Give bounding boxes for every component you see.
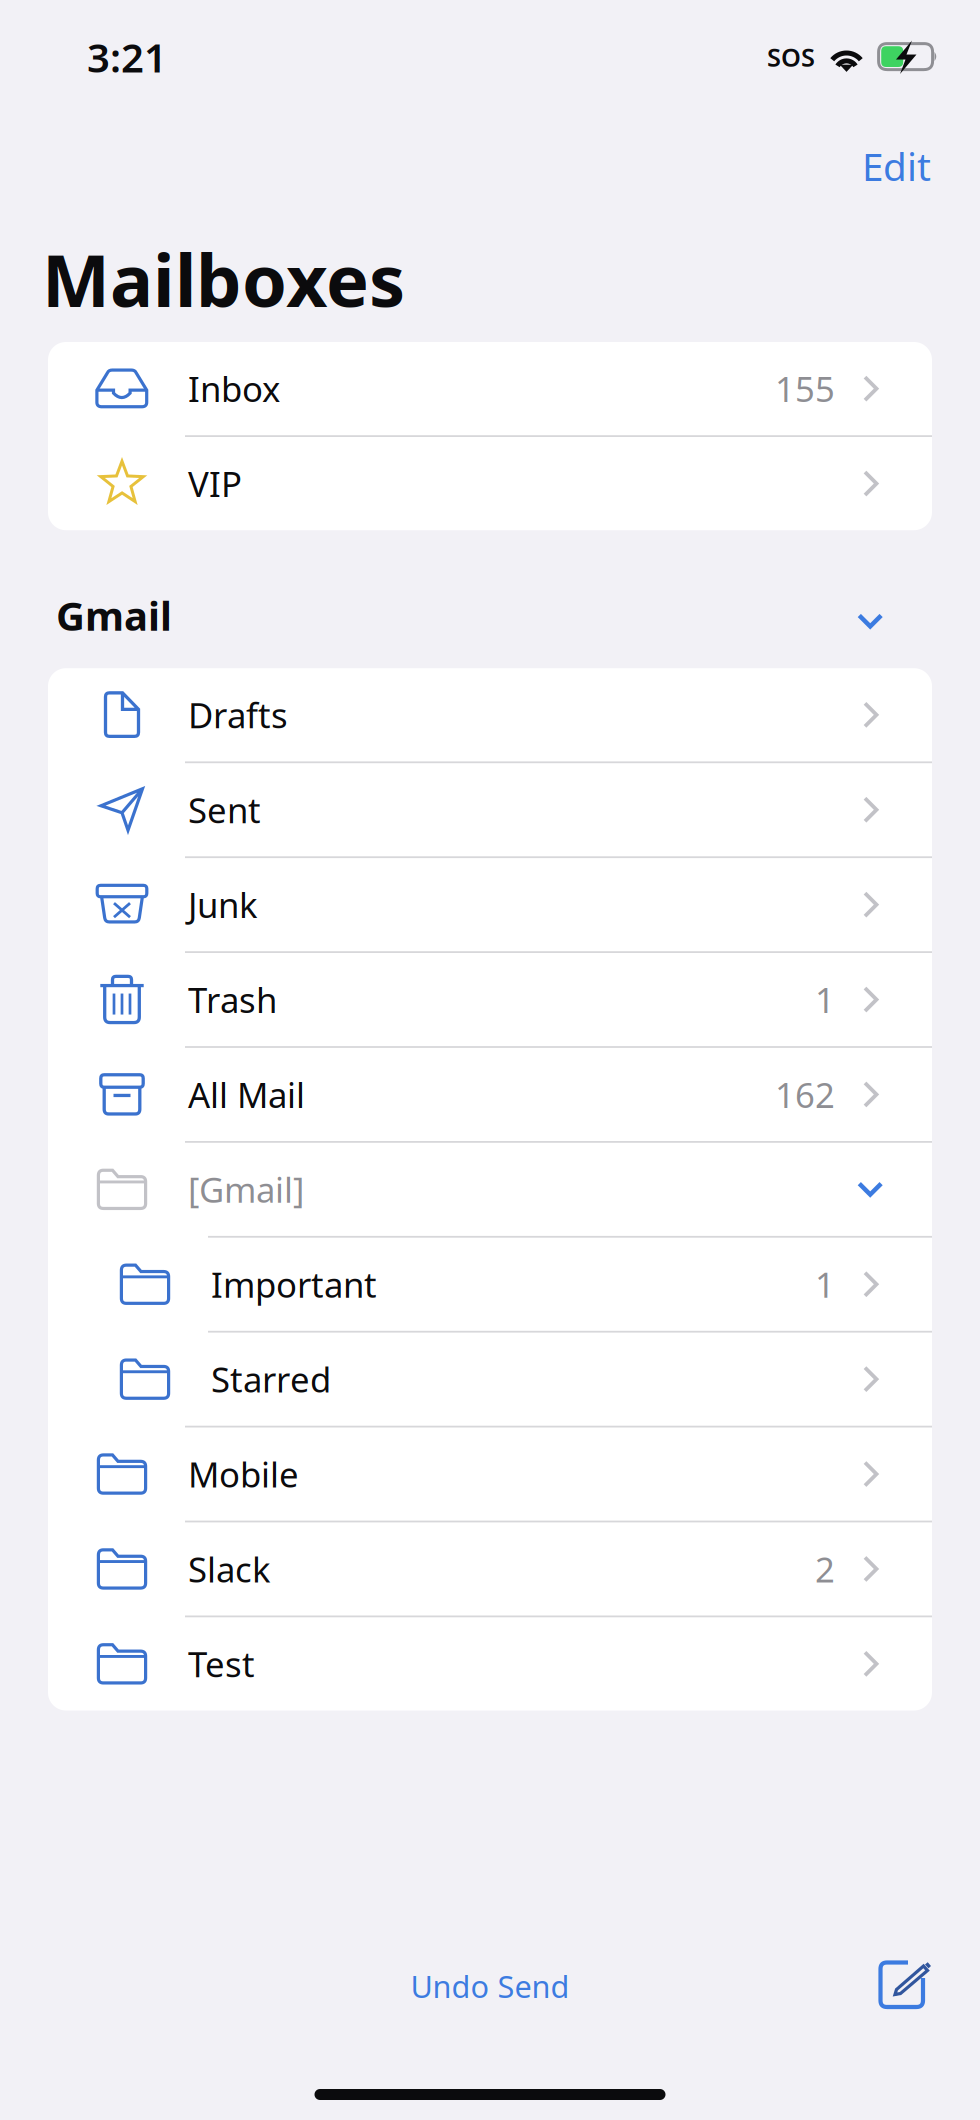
staticText: Important	[211, 1261, 377, 1307]
button[interactable]: Inbox	[48, 342, 932, 435]
button[interactable]: Drafts	[48, 668, 932, 761]
staticText: Inbox	[188, 366, 280, 412]
button[interactable]: Edit	[846, 121, 947, 197]
button[interactable]: Mobile	[48, 1427, 932, 1521]
staticText: [Gmail]	[188, 1166, 304, 1212]
staticText: Slack	[188, 1546, 271, 1592]
button[interactable]: Starred	[48, 1332, 932, 1426]
button[interactable]: All Mail	[48, 1048, 932, 1141]
staticText: Undo Send	[410, 1966, 569, 2006]
staticText: 155	[775, 366, 835, 412]
staticText: Gmail	[56, 589, 172, 642]
staticText: 1	[815, 976, 835, 1022]
button[interactable]: VIP	[48, 437, 932, 530]
staticText: 1	[815, 1261, 835, 1307]
button[interactable]: Sent	[48, 763, 932, 856]
button[interactable]: Undo Send	[390, 1952, 589, 2020]
staticText: Starred	[211, 1356, 331, 1402]
staticText: 3:21	[87, 30, 167, 83]
staticText: Trash	[188, 976, 277, 1022]
staticText: Mailboxes	[42, 231, 405, 327]
staticText: 2	[815, 1546, 835, 1592]
button[interactable]: Gmail	[0, 592, 980, 638]
staticText: Drafts	[188, 692, 288, 738]
button[interactable]: Trash	[48, 953, 932, 1046]
staticText: 162	[775, 1071, 835, 1117]
button[interactable]: Important	[48, 1238, 932, 1331]
button[interactable]: Test	[48, 1617, 932, 1710]
staticText: All Mail	[188, 1071, 305, 1117]
staticText: Edit	[862, 140, 931, 192]
button[interactable]: Compose	[870, 1952, 944, 2020]
button[interactable]: [Gmail]	[48, 1143, 932, 1236]
staticText: VIP	[188, 460, 242, 506]
staticText: Sent	[188, 787, 261, 833]
button[interactable]: Junk	[48, 858, 932, 951]
staticText: Mobile	[188, 1451, 299, 1497]
staticText: SOS	[767, 40, 815, 74]
staticText: Junk	[188, 882, 258, 928]
staticText: Test	[188, 1641, 255, 1687]
button[interactable]: Slack	[48, 1522, 932, 1616]
